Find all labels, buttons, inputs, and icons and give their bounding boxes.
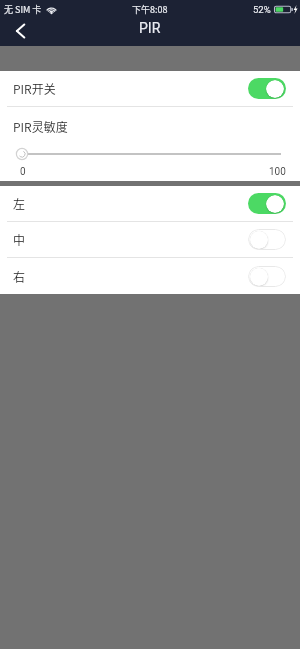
staticText: PIR bbox=[139, 20, 161, 36]
button[interactable]: Switch on bbox=[248, 193, 286, 214]
staticText: 中 bbox=[13, 231, 26, 248]
button[interactable]: PIR开关 bbox=[0, 71, 300, 106]
button[interactable]: Back bbox=[4, 22, 36, 46]
button[interactable]: Switch off bbox=[248, 229, 286, 250]
staticText: PIR灵敏度 bbox=[13, 118, 68, 135]
button[interactable]: 中 bbox=[0, 222, 300, 257]
staticText: 52% bbox=[253, 4, 271, 15]
button[interactable]: 右 bbox=[0, 258, 300, 294]
button[interactable]: Switch off bbox=[248, 266, 286, 287]
button[interactable]: Switch on bbox=[248, 78, 286, 99]
staticText: 下午8:08 bbox=[132, 3, 168, 16]
staticText: 0 bbox=[20, 166, 26, 178]
staticText: 无 SIM 卡 bbox=[4, 3, 42, 16]
staticText: 左 bbox=[13, 195, 26, 212]
button[interactable]: 左 bbox=[0, 186, 300, 221]
staticText: 右 bbox=[13, 268, 26, 285]
button[interactable]: PIR sensitivity slider bbox=[0, 145, 300, 163]
staticText: 100 bbox=[269, 166, 286, 178]
staticText: PIR开关 bbox=[13, 80, 56, 97]
